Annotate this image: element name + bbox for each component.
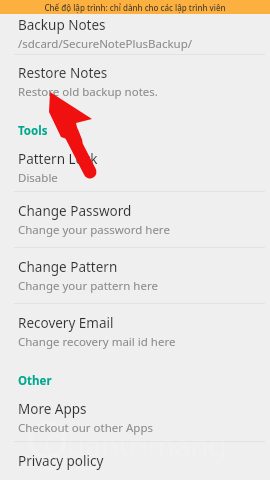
staticText: Change your pattern here	[18, 278, 158, 294]
button[interactable]: Change Pattern	[0, 248, 270, 303]
staticText: Quantrimang	[44, 424, 227, 465]
button[interactable]: Change Password	[0, 192, 270, 247]
button[interactable]: Recovery Email	[0, 304, 270, 359]
staticText: Disable	[18, 170, 58, 186]
staticText: Restore Notes	[18, 64, 108, 82]
staticText: Restore old backup notes.	[18, 84, 158, 100]
staticText: Change recovery mail id here	[18, 334, 176, 350]
staticText: Chế độ lập trình: chỉ dành cho các lập t…	[44, 2, 226, 13]
staticText: Tools	[18, 123, 48, 139]
button[interactable]: Restore Notes	[0, 55, 270, 109]
staticText: Recovery Email	[18, 314, 114, 332]
staticText: Privacy policy	[18, 452, 104, 470]
button[interactable]: Backup Notes	[0, 14, 270, 54]
staticText: Change Pattern	[18, 258, 118, 276]
staticText: Backup Notes	[18, 16, 106, 34]
staticText: Checkout our other Apps	[18, 420, 153, 436]
staticText: /sdcard/SecureNotePlusBackup/	[18, 36, 193, 52]
staticText: Change your password here	[18, 222, 170, 238]
button[interactable]: Privacy policy	[0, 442, 270, 480]
staticText: Change Password	[18, 202, 132, 220]
staticText: Pattern Lock	[18, 150, 98, 168]
button[interactable]: More Apps	[0, 395, 270, 441]
staticText: More Apps	[18, 400, 87, 418]
staticText: Other	[18, 373, 52, 389]
button[interactable]: Pattern Lock	[0, 145, 270, 191]
